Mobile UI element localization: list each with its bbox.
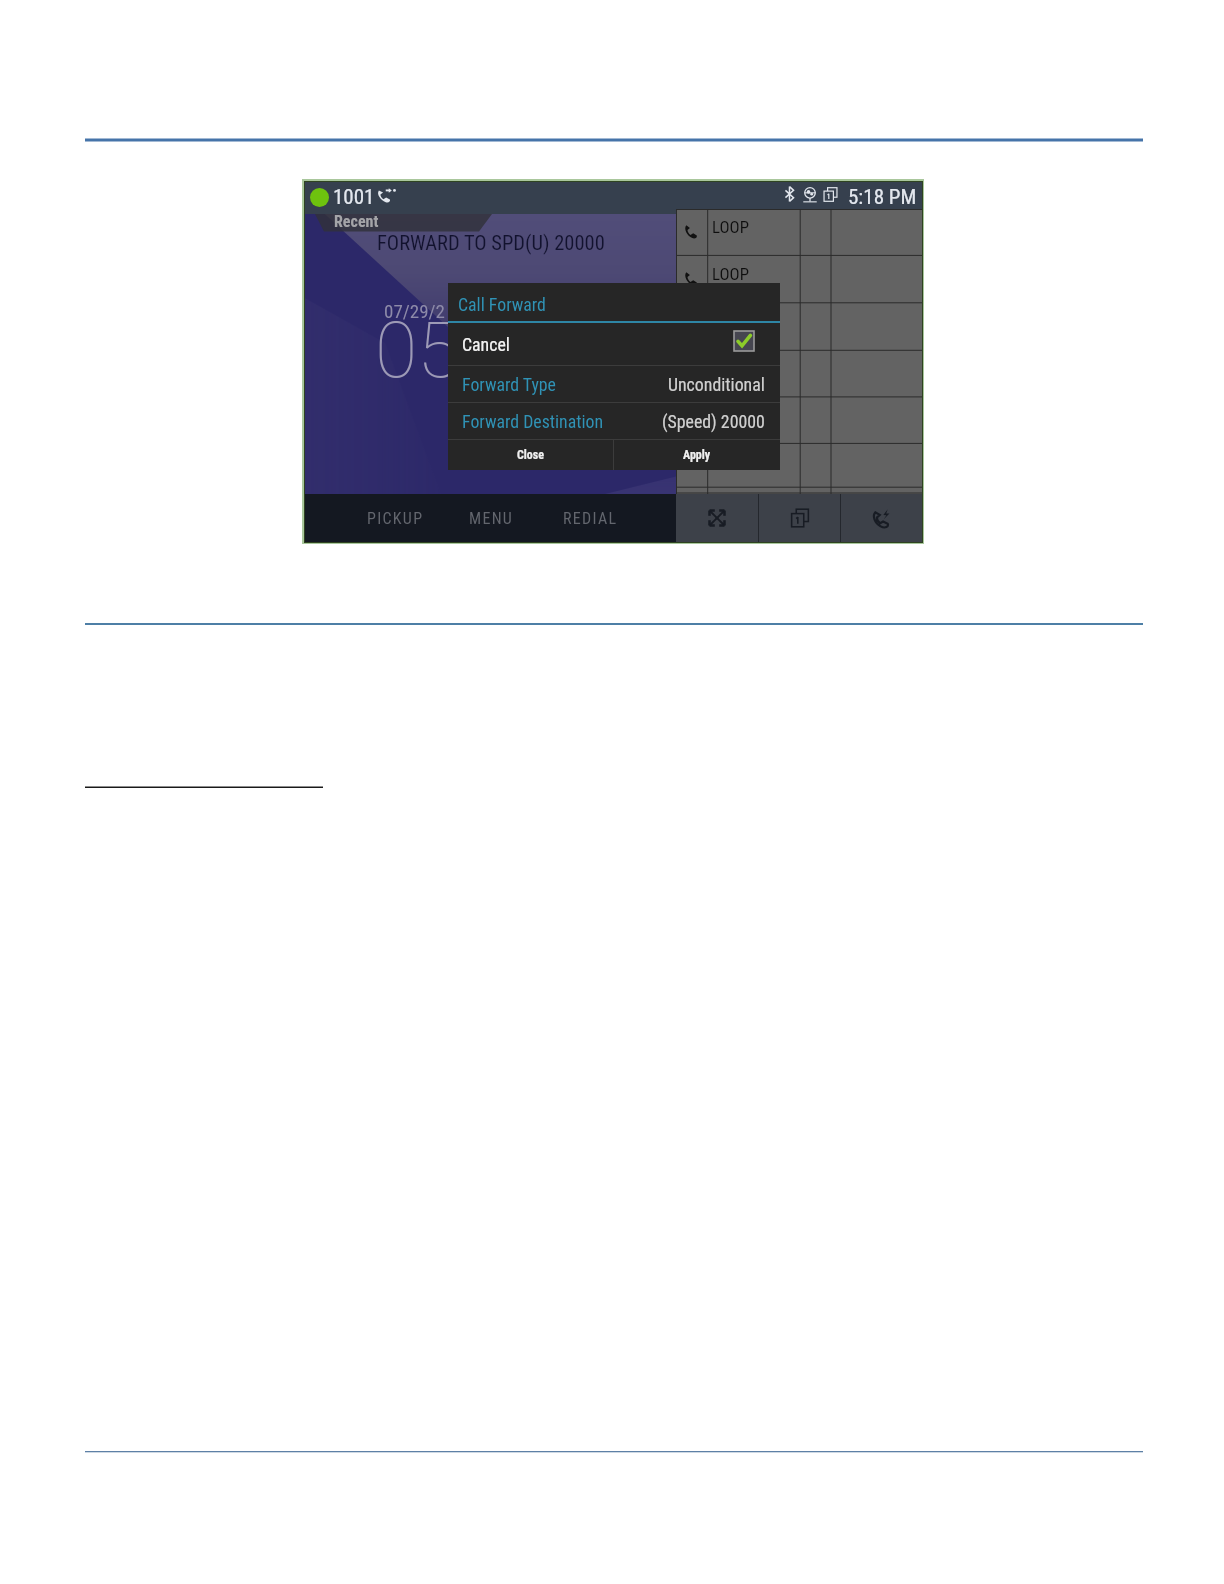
staticText: FORWARD TO SPD(U) 20000 — [377, 231, 605, 255]
staticText: 1001 — [333, 185, 375, 210]
staticText: Forward Destination — [462, 411, 604, 432]
staticText: LOOP — [712, 264, 749, 284]
staticText: Unconditional — [668, 374, 765, 395]
staticText: Recent — [334, 212, 379, 231]
button[interactable]: New call — [841, 494, 922, 542]
staticText: 5:18 PM — [848, 185, 917, 210]
staticText: Apply — [683, 448, 711, 462]
button[interactable]: Fullscreen — [676, 494, 758, 542]
staticText: Close — [517, 448, 545, 462]
staticText: 05 — [375, 306, 460, 396]
button[interactable]: Forward Type — [448, 366, 780, 402]
staticText: REDIAL — [563, 509, 618, 528]
button[interactable]: Apply — [614, 440, 780, 470]
staticText: 07/29/2 — [384, 300, 445, 322]
button[interactable]: Cancel — [448, 323, 780, 365]
staticText: PICKUP — [367, 509, 424, 528]
staticText: Cancel — [462, 334, 510, 355]
button[interactable]: Switch window — [759, 494, 840, 542]
staticText: LOOP — [712, 217, 749, 237]
button[interactable]: Forward Destination — [448, 403, 780, 439]
button[interactable]: Close — [448, 440, 613, 470]
staticText: Call Forward — [458, 294, 546, 315]
button[interactable]: PICKUP — [361, 500, 430, 537]
staticText: (Speed) 20000 — [662, 411, 765, 432]
button[interactable]: REDIAL — [557, 500, 624, 537]
button[interactable]: LOOP — [676, 210, 922, 257]
staticText: MENU — [469, 509, 514, 528]
staticText: Forward Type — [462, 374, 556, 395]
button[interactable]: LOOP — [676, 257, 922, 304]
button[interactable]: MENU — [463, 500, 520, 537]
